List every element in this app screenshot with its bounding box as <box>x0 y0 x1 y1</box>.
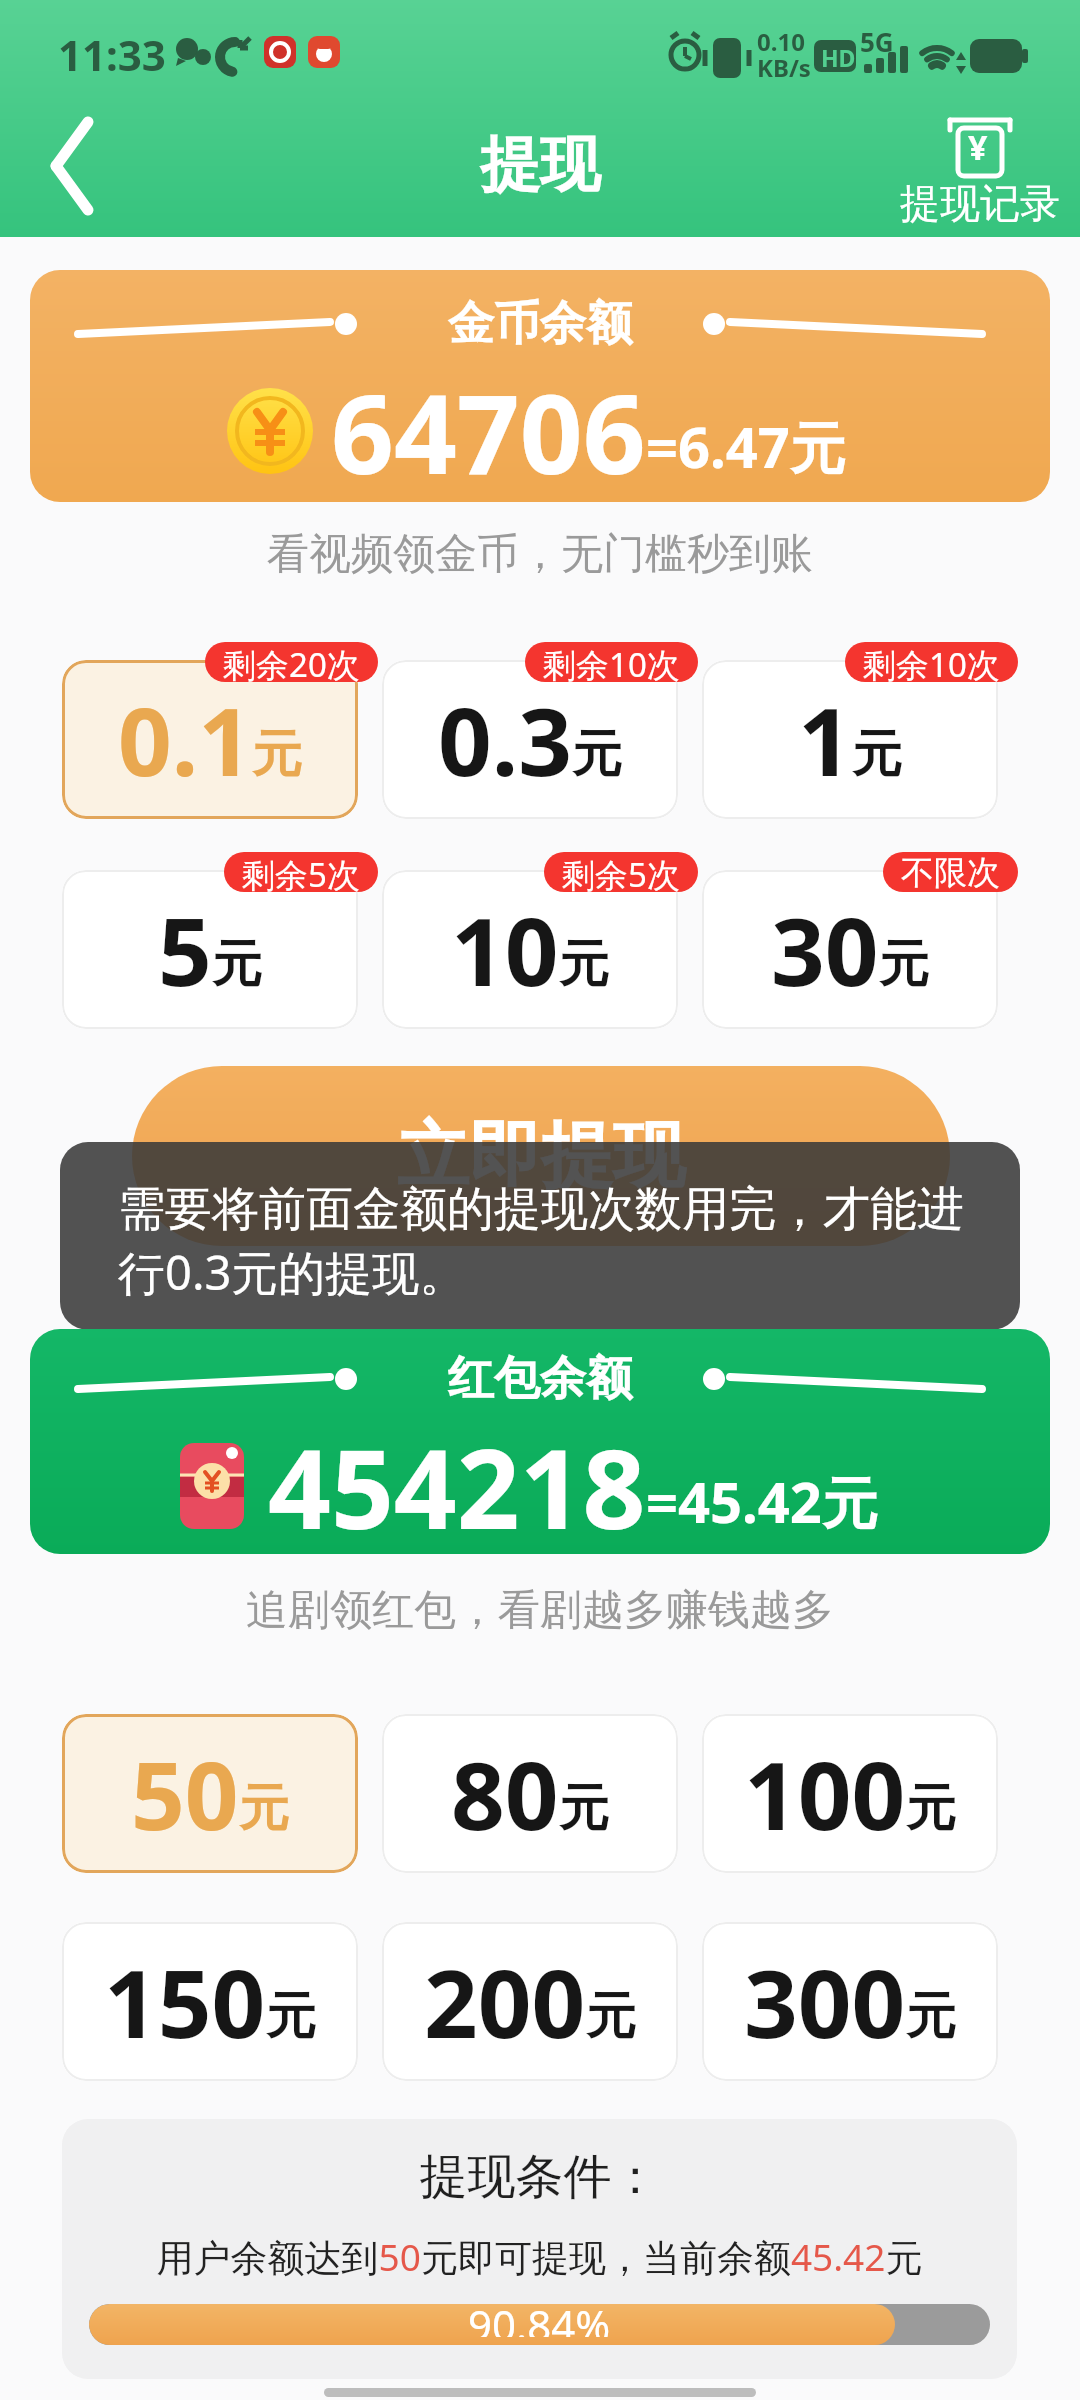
staticText: 追剧领红包，看剧越多赚钱越多 <box>0 1584 1080 1637</box>
staticText: 0.3 <box>438 676 572 804</box>
staticText: 立即提现 <box>397 1111 685 1202</box>
staticText: 5G <box>860 24 894 59</box>
staticText: 80 <box>451 1730 559 1858</box>
staticText: 200 <box>424 1938 586 2066</box>
staticText: 元 <box>252 723 302 786</box>
staticText: 提现 <box>0 127 1080 203</box>
staticText: =45.42元 <box>646 1463 878 1539</box>
staticText: 100 <box>744 1730 906 1858</box>
staticText: 不限次 <box>901 852 1000 892</box>
staticText: 50 <box>131 1730 239 1858</box>
staticText: 元 <box>559 1777 609 1840</box>
staticText: 元 <box>852 723 902 786</box>
staticText: ¥ <box>968 124 988 170</box>
staticText: 剩余5次 <box>562 852 680 892</box>
button[interactable]: 150 <box>62 1922 358 2081</box>
staticText: 元 <box>572 723 622 786</box>
staticText: 元 <box>879 933 929 996</box>
staticText: 红包余额 <box>448 1350 632 1408</box>
staticText: 10 <box>451 886 559 1014</box>
staticText: 0.1 <box>118 676 252 804</box>
staticText: 1 <box>798 676 852 804</box>
button[interactable]: ¥ <box>900 110 1060 230</box>
staticText: 剩余10次 <box>543 642 680 682</box>
button[interactable]: 300 <box>702 1922 998 2081</box>
staticText: 454218 <box>268 1411 646 1554</box>
staticText: HD <box>821 42 856 73</box>
staticText: 剩余5次 <box>242 852 360 892</box>
staticText: 150 <box>104 1938 266 2066</box>
staticText: 11:33 <box>58 26 166 83</box>
staticText: 元 <box>212 933 262 996</box>
staticText: 0.10 <box>757 25 805 58</box>
button[interactable]: 200 <box>382 1922 678 2081</box>
staticText: 300 <box>744 1938 906 2066</box>
staticText: 5 <box>158 886 212 1014</box>
staticText: =6.47元 <box>646 408 846 484</box>
staticText: 提现条件： <box>62 2147 1017 2207</box>
button[interactable] <box>48 120 98 212</box>
staticText: 元 <box>559 933 609 996</box>
staticText: 金币余额 <box>448 295 632 353</box>
staticText: 需要将前面金额的提现次数用完，才能进 行0.3元的提现。 <box>118 1180 964 1304</box>
staticText: 30 <box>771 886 879 1014</box>
staticText: 看视频领金币，无门槛秒到账 <box>0 528 1080 581</box>
button[interactable]: 5 <box>62 870 358 1029</box>
button[interactable]: 立即提现 <box>132 1066 950 1246</box>
staticText: KB/s <box>757 51 811 84</box>
button[interactable]: 80 <box>382 1714 678 1873</box>
button[interactable]: 1 <box>702 660 998 819</box>
staticText: 90.84% <box>468 2304 611 2337</box>
staticText: 剩余10次 <box>863 642 1000 682</box>
button[interactable]: 10 <box>382 870 678 1029</box>
button[interactable]: 30 <box>702 870 998 1029</box>
staticText: 元 <box>239 1777 289 1840</box>
staticText: 元 <box>266 1985 316 2048</box>
staticText: 用户余额达到50元即可提现，当前余额45.42元 <box>62 2231 1017 2282</box>
button[interactable]: 100 <box>702 1714 998 1873</box>
staticText: 提现记录 <box>900 178 1060 228</box>
staticText: 元 <box>906 1777 956 1840</box>
staticText: 剩余20次 <box>223 642 360 682</box>
staticText: 元 <box>586 1985 636 2048</box>
button[interactable]: 0.3 <box>382 660 678 819</box>
staticText: 元 <box>906 1985 956 2048</box>
button[interactable]: 50 <box>62 1714 358 1873</box>
staticText: 64706 <box>331 356 646 502</box>
button[interactable]: 0.1 <box>62 660 358 819</box>
